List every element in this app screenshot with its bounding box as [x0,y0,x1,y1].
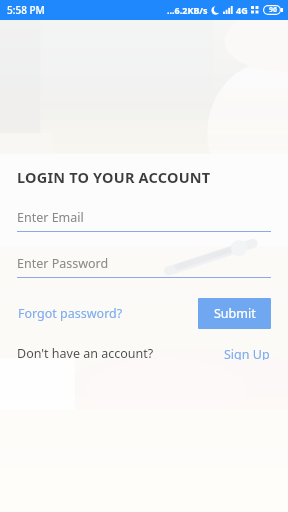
staticText: Forgot password? [18,305,123,322]
button[interactable]: Enter Password [17,255,271,278]
staticText: Submit [214,305,256,322]
button[interactable]: Sign Up [223,343,271,363]
button[interactable]: Submit [198,298,271,329]
button[interactable]: Enter Email [17,209,271,232]
staticText: 96 [269,5,278,15]
staticText: 5:58 PM [7,3,45,17]
staticText: Enter Password [17,255,109,272]
staticText: 4G [236,4,248,16]
staticText: Sign Up [224,346,270,360]
staticText: Don't have an account? [17,345,154,362]
button[interactable]: Forgot password? [17,301,124,326]
staticText: LOGIN TO YOUR ACCOUNT [17,167,211,187]
staticText: ...6.2KB/s [167,4,208,16]
staticText: Enter Email [17,209,84,226]
other: Do not disturb [211,6,220,15]
